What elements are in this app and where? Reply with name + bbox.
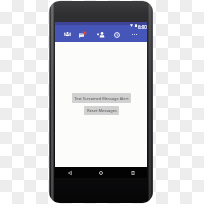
button[interactable]: Show history (109, 27, 124, 42)
staticText: 6:00 (138, 24, 147, 30)
staticText: Reset Messages (87, 108, 117, 113)
button[interactable]: People (60, 27, 75, 42)
button[interactable]: More options (127, 27, 142, 42)
button[interactable]: Reset Messages (84, 106, 119, 115)
button[interactable]: Recent apps (127, 167, 138, 178)
button[interactable]: Messages (75, 27, 90, 42)
staticText: Test Screamed Message Alert (74, 96, 129, 101)
button[interactable]: Test Screamed Message Alert (72, 93, 131, 103)
button[interactable]: Add person (93, 27, 108, 42)
button[interactable]: Home (95, 167, 106, 178)
button[interactable]: Back (64, 167, 75, 178)
